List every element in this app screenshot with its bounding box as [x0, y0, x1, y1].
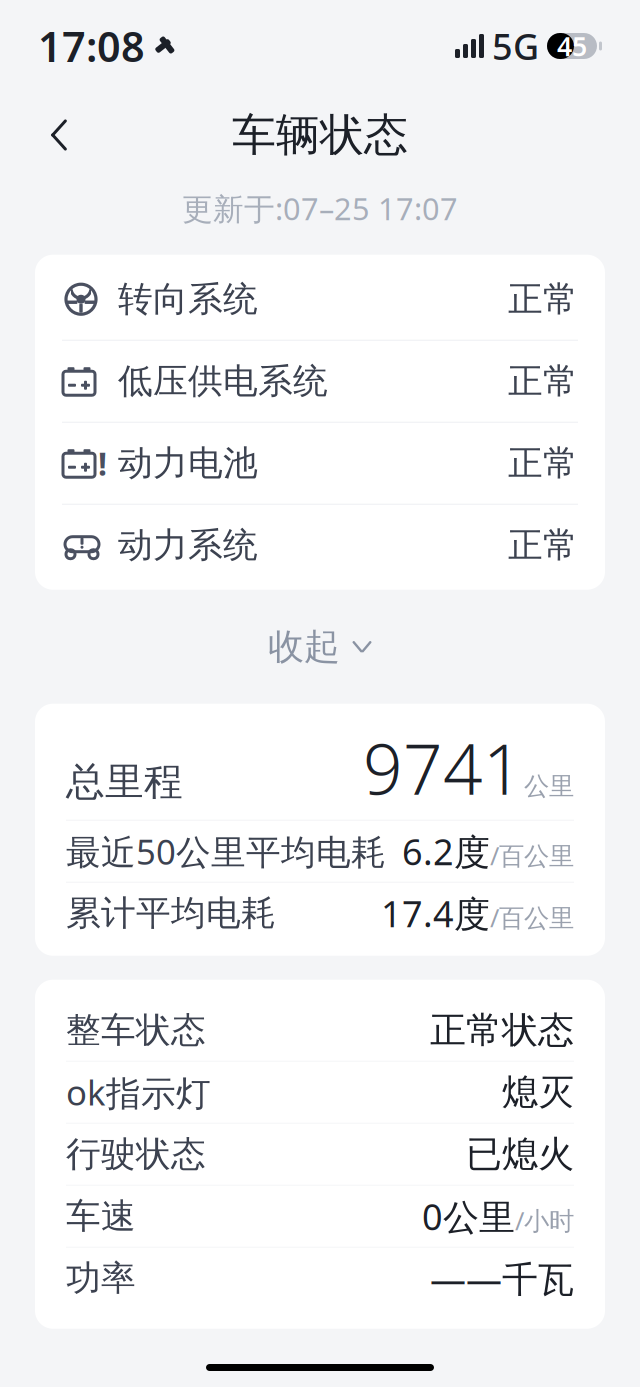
- staticText: 已熄火: [466, 1132, 574, 1176]
- button[interactable]: 低压供电系统: [35, 341, 605, 422]
- staticText: 收起: [268, 625, 340, 669]
- staticText: 更新于:07–25 17:07: [182, 188, 458, 229]
- staticText: 动力系统: [118, 524, 258, 566]
- staticText: 正常: [508, 278, 578, 320]
- staticText: 45: [557, 28, 587, 64]
- staticText: 5G: [492, 22, 539, 70]
- staticText: 正常: [508, 524, 578, 566]
- staticText: 9741: [363, 722, 523, 814]
- staticText: 整车状态: [66, 1009, 206, 1051]
- staticText: 正常: [508, 442, 578, 484]
- staticText: /百公里: [490, 900, 574, 934]
- staticText: 功率: [66, 1257, 136, 1299]
- staticText: 正常状态: [430, 1008, 574, 1052]
- button[interactable]: !: [35, 423, 605, 504]
- staticText: 17:08: [38, 19, 145, 73]
- staticText: 最近50公里平均电耗: [66, 828, 386, 874]
- staticText: 总里程: [66, 758, 183, 805]
- staticText: 熄灭: [502, 1070, 574, 1114]
- staticText: 累计平均电耗: [66, 892, 276, 934]
- staticText: 车速: [66, 1195, 136, 1237]
- staticText: !: [98, 442, 107, 484]
- staticText: 17.4度: [381, 889, 490, 937]
- staticText: ——千瓦: [430, 1254, 574, 1302]
- staticText: /百公里: [490, 838, 574, 872]
- staticText: 公里: [524, 771, 574, 802]
- staticText: 正常: [508, 360, 578, 402]
- staticText: 车辆状态: [232, 108, 408, 162]
- button[interactable]: 返回: [28, 104, 90, 166]
- staticText: 低压供电系统: [118, 360, 328, 402]
- button[interactable]: 收起: [244, 616, 396, 678]
- staticText: /小时: [515, 1203, 574, 1237]
- button[interactable]: 转向系统: [35, 259, 605, 340]
- staticText: ok指示灯: [66, 1069, 211, 1115]
- staticText: 转向系统: [118, 278, 258, 320]
- staticText: 0公里: [422, 1192, 515, 1240]
- staticText: 行驶状态: [66, 1133, 206, 1175]
- staticText: 6.2度: [402, 827, 490, 875]
- staticText: 动力电池: [118, 442, 258, 484]
- button[interactable]: 动力系统: [35, 505, 605, 586]
